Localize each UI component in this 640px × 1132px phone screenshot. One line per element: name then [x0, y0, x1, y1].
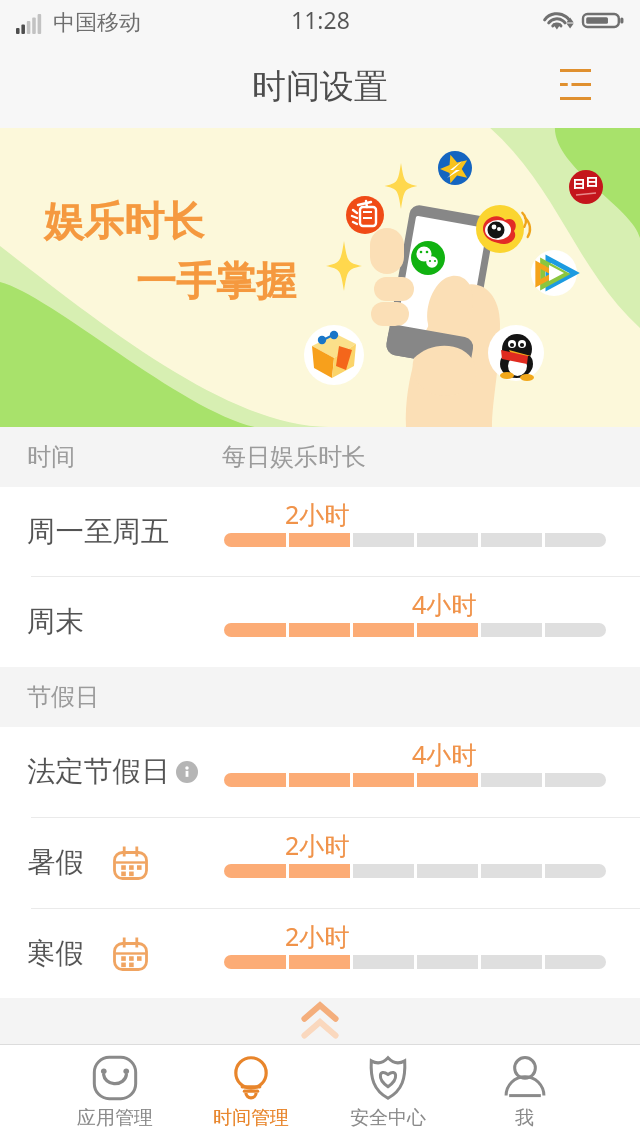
staticText: 我	[515, 1106, 534, 1130]
button[interactable]: 寒假	[0, 909, 640, 998]
button[interactable]: Collapse	[0, 998, 640, 1044]
staticText: 4小时	[412, 737, 477, 771]
staticText: 寒假	[27, 936, 84, 972]
button[interactable]: 周一至周五	[0, 487, 640, 576]
staticText: 暑假	[27, 845, 84, 881]
staticText: 4小时	[412, 587, 477, 621]
staticText: 法定节假日	[27, 754, 170, 790]
button[interactable]: 时间管理	[183, 1045, 319, 1132]
staticText: 时间	[27, 442, 75, 472]
staticText: 2小时	[285, 828, 350, 862]
staticText: 2小时	[285, 919, 350, 953]
staticText: 周一至周五	[27, 514, 170, 550]
staticText: 时间管理	[213, 1106, 289, 1130]
staticText: 中国移动	[53, 9, 141, 37]
staticText: 一手掌握	[136, 256, 296, 306]
button[interactable]: 周末	[0, 577, 640, 667]
button[interactable]: 安全中心	[319, 1045, 456, 1132]
staticText: 娱乐时长	[44, 196, 204, 246]
staticText: 周末	[27, 604, 84, 640]
button[interactable]: Menu	[549, 58, 601, 110]
staticText: 11:28	[291, 4, 350, 35]
button[interactable]: 法定节假日	[0, 727, 640, 817]
staticText: 2小时	[285, 497, 350, 531]
staticText: 每日娱乐时长	[222, 442, 366, 472]
staticText: 节假日	[27, 682, 99, 712]
button[interactable]: 我	[456, 1045, 593, 1132]
button[interactable]: 应用管理	[47, 1045, 183, 1132]
staticText: 时间设置	[252, 65, 388, 108]
staticText: 应用管理	[77, 1106, 153, 1130]
button[interactable]: 暑假	[0, 818, 640, 908]
staticText: 安全中心	[350, 1106, 426, 1130]
